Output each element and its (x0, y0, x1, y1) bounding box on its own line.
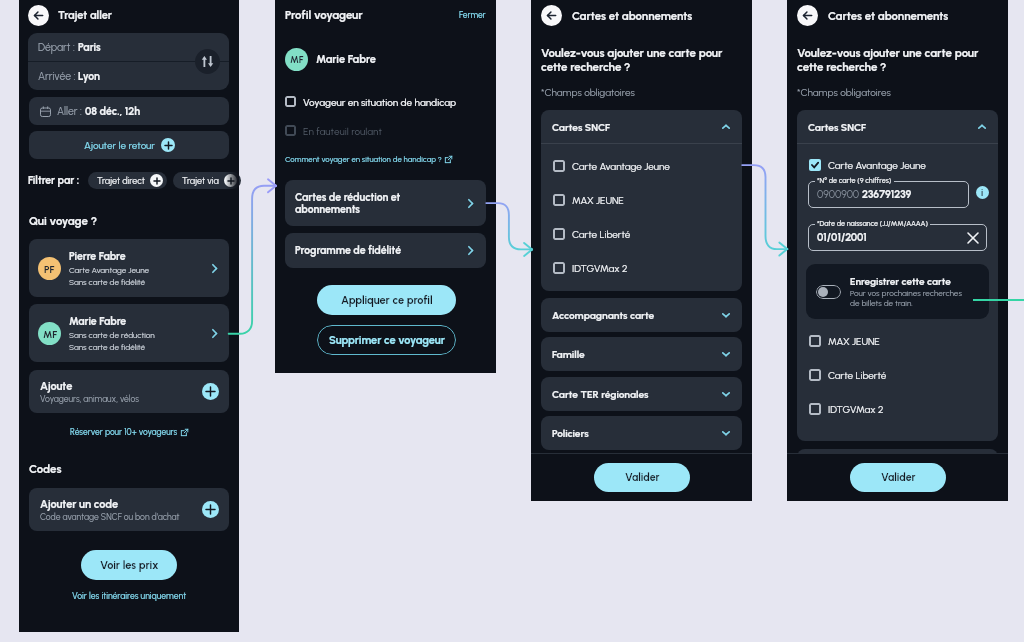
staticText: Fermer (459, 10, 486, 20)
staticText: *N° de carte (9 chiffres) (817, 176, 892, 185)
button[interactable]: Back (541, 5, 562, 26)
button[interactable]: Aller : (29, 97, 229, 125)
button[interactable]: Clear (968, 233, 978, 243)
button[interactable]: Valider (850, 463, 946, 492)
staticText: Valider (881, 471, 916, 484)
button[interactable]: Cartes SNCF (797, 110, 998, 143)
button[interactable]: Comment voyager en situation de handicap… (285, 155, 452, 164)
staticText: Valider (625, 471, 660, 484)
button[interactable]: Carte TER régionales (541, 377, 742, 411)
staticText: Programme de fidélité (295, 244, 465, 257)
staticText: Sans carte de fidélité (69, 342, 146, 352)
button[interactable] (808, 224, 987, 251)
staticText: Sans carte de fidélité (69, 277, 146, 287)
staticText: Comment voyager en situation de handicap… (285, 155, 442, 164)
staticText: Qui voyage ? (29, 214, 98, 228)
button[interactable]: Arrivée : (28, 62, 229, 90)
staticText: Carte TER régionales (552, 388, 721, 400)
button[interactable]: MAX JEUNE (797, 324, 998, 358)
button[interactable]: Voir les itinéraires uniquement (19, 591, 239, 601)
button[interactable]: Cartes de réduction et abonnements (285, 180, 486, 226)
staticText: Filtrer par : (28, 174, 80, 187)
button[interactable]: Carte Avantage Jeune (541, 149, 742, 183)
staticText: Carte Liberté (572, 228, 631, 240)
button[interactable]: Famille (541, 337, 742, 371)
staticText: Cartes SNCF (552, 121, 721, 133)
staticText: 08 déc., 12h (85, 105, 141, 118)
button[interactable]: Policiers (541, 416, 742, 450)
staticText: *Date de naissance (JJ/MM/AAAA) (817, 219, 928, 228)
button[interactable]: Voyageur en situation de handicap (285, 95, 486, 108)
button[interactable]: Information (976, 186, 989, 199)
staticText: Trajet direct (97, 175, 145, 186)
staticText: 236791239 (862, 188, 912, 201)
button[interactable]: Back (797, 5, 818, 26)
staticText: Carte Liberté (828, 369, 887, 381)
staticText: Sans carte de réduction (69, 330, 155, 340)
staticText: Lyon (78, 70, 100, 83)
staticText: Réserver pour 10+ voyageurs (70, 427, 178, 437)
staticText: Codes (29, 462, 62, 476)
button[interactable]: Ajouter un code (29, 488, 229, 531)
staticText: Carte Avantage Jeune (69, 265, 150, 275)
staticText: Trajet aller (58, 9, 113, 22)
staticText: Supprimer ce voyageur (329, 334, 445, 347)
button[interactable]: IDTGVMax 2 (797, 392, 998, 426)
staticText: Voir les itinéraires uniquement (72, 591, 187, 601)
staticText: Voyageurs, animaux, vélos (40, 394, 139, 404)
staticText: Trajet via (182, 175, 219, 186)
button[interactable]: Ajouter le retour (29, 131, 229, 159)
staticText: Marie Fabre (69, 315, 127, 328)
staticText: Paris (78, 41, 101, 54)
staticText: *Champs obligatoires (797, 86, 891, 98)
staticText: MF (290, 54, 304, 65)
staticText: Pierre Fabre (69, 250, 126, 263)
button[interactable]: Appliquer ce profil (317, 285, 456, 315)
button[interactable]: IDTGVMax 2 (541, 251, 742, 285)
staticText: 0900900 (817, 188, 862, 201)
button[interactable]: Supprimer ce voyageur (317, 325, 456, 355)
staticText: Ajoute (40, 380, 73, 393)
staticText: Ajouter le retour (84, 139, 155, 151)
staticText: Accompagnants carte (552, 309, 721, 321)
staticText: En fauteuil roulant (303, 125, 382, 137)
button[interactable]: En fauteuil roulant (285, 124, 486, 137)
button[interactable]: Cartes SNCF (541, 110, 742, 143)
staticText: Carte Avantage Jeune (572, 160, 670, 172)
button[interactable]: Voir les prix (81, 550, 177, 580)
button[interactable]: Trajet direct (88, 172, 167, 189)
staticText: Aller : (57, 105, 85, 118)
staticText: IDTGVMax 2 (828, 403, 884, 415)
button[interactable]: Enregistrer cette carte (806, 264, 989, 319)
button[interactable]: Carte Liberté (541, 217, 742, 251)
button[interactable]: Départ : (28, 33, 229, 61)
button[interactable]: Programme de fidélité (285, 233, 486, 268)
staticText: Arrivée : (38, 70, 78, 83)
button[interactable]: Carte Avantage Jeune (797, 158, 998, 171)
button[interactable]: MF (29, 304, 229, 362)
staticText: Voulez-vous ajouter une carte pour cette… (541, 46, 723, 74)
button[interactable]: Accompagnants carte (541, 298, 742, 332)
staticText: i (981, 187, 984, 198)
staticText: Départ : (38, 41, 78, 54)
staticText: 01/01/2001 (817, 231, 867, 244)
button[interactable]: Trajet via (173, 172, 241, 189)
button[interactable]: Swap departure and arrival (195, 49, 220, 74)
staticText: Famille (552, 348, 721, 360)
button[interactable]: Ajoute (29, 370, 229, 413)
button[interactable]: Valider (594, 463, 690, 492)
button[interactable]: MAX JEUNE (541, 183, 742, 217)
staticText: Cartes et abonnements (572, 9, 693, 23)
staticText: PF (44, 263, 55, 275)
button[interactable]: Réserver pour 10+ voyageurs (19, 427, 239, 437)
button[interactable] (808, 181, 969, 208)
button[interactable]: Fermer (459, 10, 486, 20)
button[interactable]: PF (29, 239, 229, 297)
staticText: Policiers (552, 427, 721, 439)
staticText: Appliquer ce profil (341, 294, 433, 307)
button[interactable]: Back (28, 5, 49, 26)
staticText: *Champs obligatoires (541, 86, 635, 98)
button[interactable]: Carte Liberté (797, 358, 998, 392)
staticText: IDTGVMax 2 (572, 262, 628, 274)
button[interactable]: Accompagnants carte (797, 449, 998, 483)
